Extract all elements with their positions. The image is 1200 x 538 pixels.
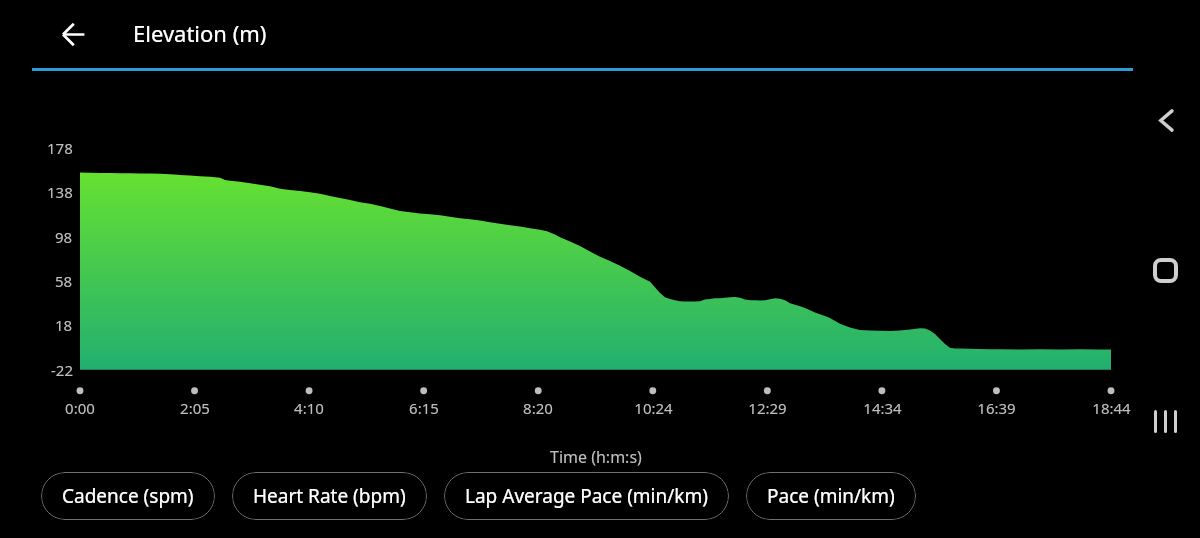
staticText: 6:15	[409, 398, 439, 418]
staticText: Heart Rate (bpm)	[253, 483, 406, 509]
staticText: 18:44	[1092, 398, 1131, 418]
staticText: 138	[47, 182, 73, 202]
staticText: 12:29	[748, 398, 787, 418]
staticText: Elevation (m)	[133, 18, 267, 48]
staticText: 58	[55, 271, 73, 291]
staticText: 10:24	[634, 398, 673, 418]
staticText: Pace (min/km)	[767, 483, 895, 509]
staticText: -22	[51, 360, 73, 380]
staticText: Lap Average Pace (min/km)	[465, 483, 708, 509]
button[interactable]: Heart Rate (bpm)	[232, 472, 427, 520]
staticText: 16:39	[977, 398, 1016, 418]
button[interactable]: Home	[1141, 246, 1189, 294]
button[interactable]: Navigate up	[49, 10, 97, 58]
button[interactable]: Pace (min/km)	[746, 472, 916, 520]
staticText: 0:00	[65, 398, 95, 418]
button[interactable]: Lap Average Pace (min/km)	[444, 472, 729, 520]
staticText: 98	[55, 227, 73, 247]
staticText: 8:20	[523, 398, 553, 418]
staticText: Cadence (spm)	[62, 483, 194, 509]
staticText: Time (h:m:s)	[550, 446, 642, 468]
staticText: 2:05	[180, 398, 210, 418]
staticText: 14:34	[863, 398, 902, 418]
staticText: 178	[47, 138, 73, 158]
staticText: 4:10	[294, 398, 324, 418]
button[interactable]: Back	[1142, 96, 1190, 144]
button[interactable]: Recent apps	[1141, 397, 1189, 445]
button[interactable]: Cadence (spm)	[41, 472, 215, 520]
staticText: 18	[55, 315, 73, 335]
